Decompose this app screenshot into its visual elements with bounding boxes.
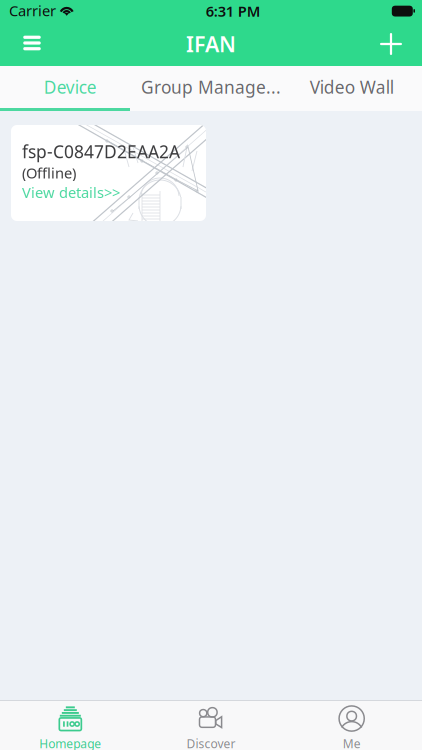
staticText: IFAN: [186, 30, 236, 58]
button[interactable]: Video Wall: [281, 66, 422, 108]
staticText: Video Wall: [310, 75, 394, 98]
button[interactable]: Add: [368, 22, 414, 66]
button[interactable]: Device: [0, 66, 141, 108]
staticText: Me: [343, 735, 361, 750]
staticText: View details>>: [22, 182, 120, 202]
staticText: fsp-C0847D2EAA2A: [22, 140, 180, 163]
button[interactable]: Discover: [141, 700, 281, 750]
staticText: Homepage: [39, 735, 101, 750]
button[interactable]: Group Manage...: [141, 66, 281, 108]
button[interactable]: Me: [281, 700, 422, 750]
staticText: (Offline): [22, 163, 76, 182]
button[interactable]: Homepage: [0, 700, 141, 750]
staticText: Device: [44, 75, 97, 98]
staticText: Discover: [186, 735, 235, 750]
button[interactable]: Menu: [9, 22, 55, 66]
staticText: Carrier: [9, 1, 56, 20]
staticText: Group Manage...: [141, 75, 281, 98]
button[interactable]: fsp-C0847D2EAA2A: [11, 125, 206, 221]
staticText: 6:31 PM: [206, 1, 261, 21]
